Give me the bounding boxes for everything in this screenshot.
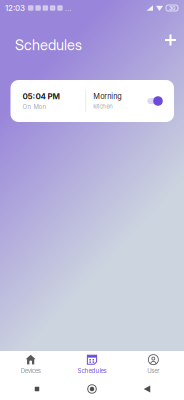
button[interactable]: Schedules	[61, 351, 123, 378]
button[interactable]: Devices	[0, 351, 61, 378]
staticText: Morning	[93, 92, 121, 101]
button[interactable]: User	[123, 351, 184, 378]
button[interactable]: Add schedule	[157, 26, 184, 53]
staticText: …	[65, 3, 72, 13]
button[interactable]: Home	[74, 378, 110, 400]
staticText: kitchen	[93, 103, 113, 110]
button[interactable]: Back	[129, 378, 165, 400]
button[interactable]: 05:04 PM	[10, 80, 174, 122]
staticText: 12:03	[5, 3, 25, 13]
staticText: 05:04 PM	[22, 91, 59, 101]
staticText: 30	[169, 5, 175, 11]
staticText: Schedules	[15, 36, 82, 54]
staticText: Schedules	[77, 367, 106, 374]
staticText: User	[147, 367, 159, 374]
staticText: On Mon	[22, 103, 46, 110]
button[interactable]: Recents	[19, 378, 55, 400]
staticText: Devices	[21, 367, 41, 374]
